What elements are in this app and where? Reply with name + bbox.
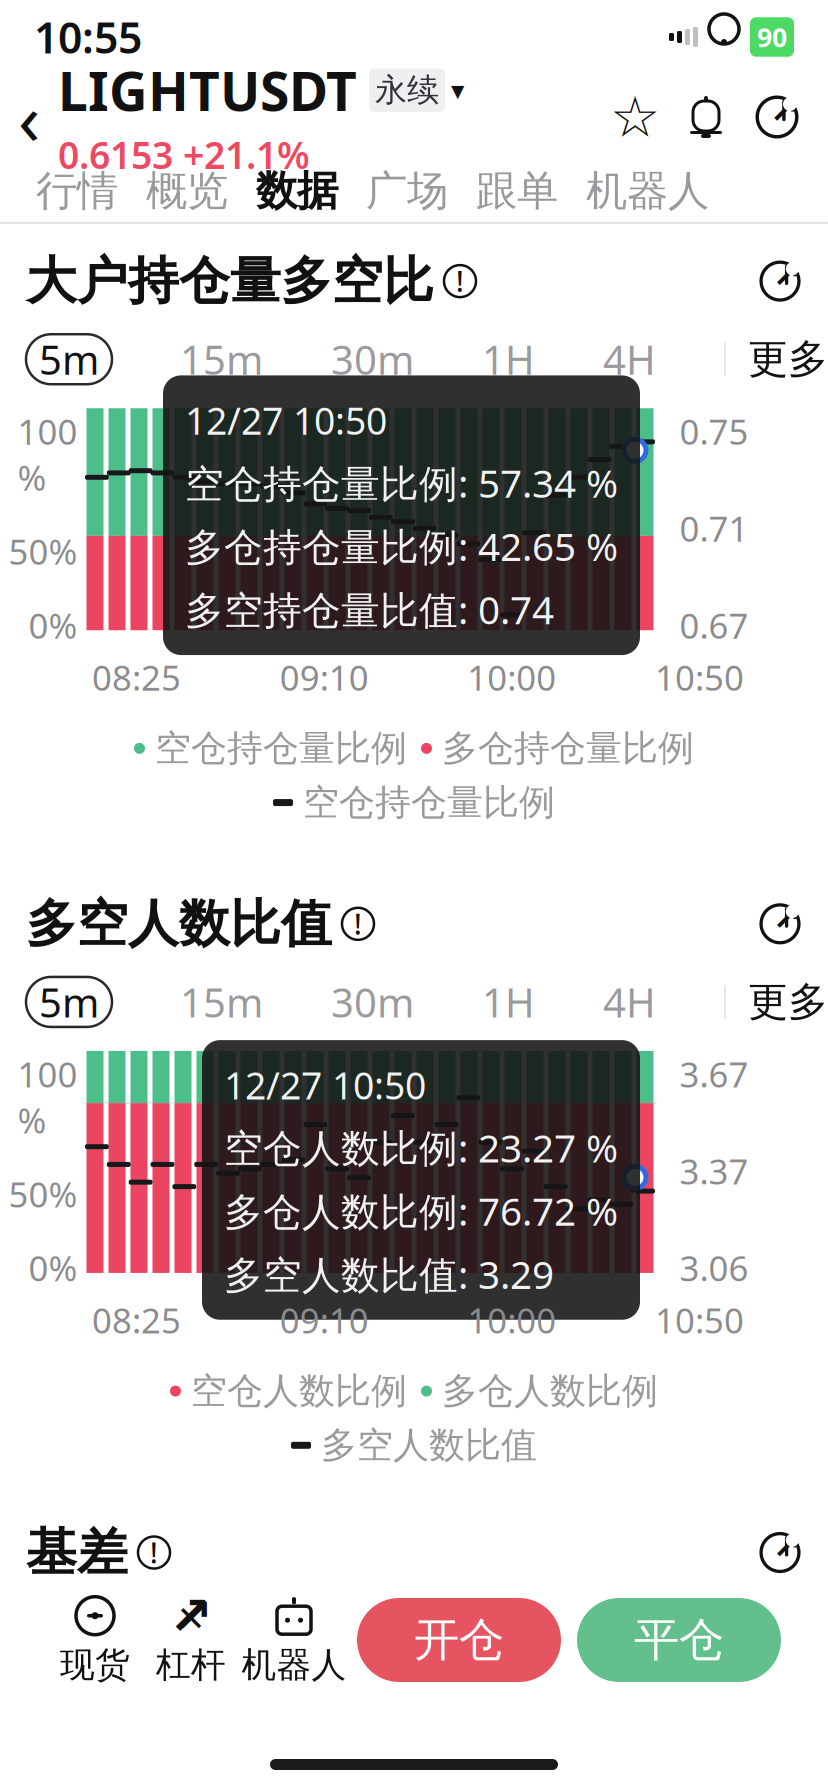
staticText: 0% — [28, 1245, 77, 1291]
staticText: 50% — [8, 528, 77, 574]
button[interactable]: 永续 — [369, 69, 464, 112]
button[interactable]: 5m — [26, 334, 112, 384]
staticText: 1H — [482, 975, 535, 1028]
staticText: 多仓持仓量比例: 42.65 % — [185, 520, 618, 572]
staticText: 行情 — [36, 166, 118, 216]
staticText: 多仓人数比例 — [442, 1369, 658, 1413]
staticText: ↗ — [168, 1585, 213, 1646]
button[interactable]: ↗ — [143, 1594, 239, 1686]
staticText: 杠杆 — [156, 1644, 226, 1686]
staticText: 永续 — [375, 71, 439, 110]
button[interactable]: Back — [0, 82, 58, 152]
staticText: 10:55 — [34, 9, 142, 65]
button[interactable]: Alerts — [686, 94, 726, 140]
staticText: 0.6153 — [58, 130, 173, 179]
button[interactable]: 5m — [26, 977, 112, 1027]
staticText: ↗ — [773, 899, 801, 937]
button[interactable]: 1H — [482, 977, 535, 1027]
staticText: 30m — [331, 975, 414, 1028]
staticText: 空仓人数比例: 23.27 % — [224, 1122, 618, 1173]
staticText: 100% — [17, 1051, 77, 1143]
staticText: ↗ — [769, 91, 798, 131]
button[interactable]: 更多 — [726, 977, 828, 1027]
staticText: 多仓持仓量比例 — [442, 726, 694, 770]
staticText: 多空人数比值 — [321, 1423, 537, 1467]
staticText: 15m — [180, 975, 263, 1028]
staticText: 广场 — [366, 166, 448, 216]
button[interactable]: Share — [754, 94, 800, 140]
button[interactable]: 4H — [603, 334, 656, 384]
staticText: 机器人 — [241, 1644, 346, 1686]
staticText: ! — [150, 1534, 158, 1571]
staticText: 4H — [603, 333, 656, 386]
staticText: 多空持仓量比值: 0.74 — [185, 584, 554, 635]
staticText: 12/27 10:50 — [185, 395, 387, 445]
button[interactable]: 行情 — [22, 160, 132, 222]
staticText: ! — [354, 905, 362, 942]
staticText: 更多 — [748, 335, 828, 384]
button[interactable]: 开仓 — [357, 1598, 561, 1682]
button[interactable]: Favorite — [612, 94, 658, 140]
staticText: 平仓 — [634, 1612, 724, 1668]
button[interactable]: 平仓 — [577, 1598, 781, 1682]
staticText: ! — [456, 262, 464, 300]
button[interactable]: Open 多空人数比值 — [758, 902, 802, 946]
staticText: 3.06 — [679, 1245, 748, 1291]
button[interactable]: 机器人 — [572, 160, 723, 222]
staticText: 机器人 — [586, 166, 709, 216]
staticText: 大户持仓量多空比 — [26, 250, 434, 312]
staticText: 概览 — [146, 166, 228, 216]
staticText: 90 — [757, 19, 787, 55]
staticText: 空仓持仓量比例 — [303, 780, 555, 825]
staticText: 10:50 — [655, 1297, 744, 1343]
staticText: 数据 — [256, 166, 338, 216]
button[interactable]: 30m — [331, 977, 414, 1027]
staticText: 0.67 — [679, 602, 748, 648]
button[interactable]: Open 基差 — [758, 1530, 802, 1574]
staticText: 15m — [180, 333, 263, 386]
button[interactable]: 1H — [482, 334, 535, 384]
staticText: 5m — [39, 333, 99, 386]
staticText: 跟单 — [476, 166, 558, 216]
button[interactable]: 15m — [180, 334, 263, 384]
button[interactable]: 现货 — [47, 1594, 143, 1686]
staticText: ↗ — [773, 1528, 801, 1566]
staticText: +21.1% — [183, 130, 310, 179]
button[interactable]: 30m — [331, 334, 414, 384]
staticText: 5m — [39, 975, 99, 1028]
staticText: 08:25 — [92, 654, 181, 700]
staticText: 08:25 — [92, 1297, 181, 1343]
staticText: 10:50 — [655, 654, 744, 700]
staticText: 更多 — [748, 977, 828, 1026]
staticText: 3.67 — [679, 1051, 748, 1097]
staticText: ▾ — [451, 75, 464, 105]
staticText: 10:00 — [467, 654, 556, 700]
staticText: 50% — [8, 1171, 77, 1217]
staticText: 1H — [482, 333, 535, 386]
staticText: ☆ — [610, 85, 660, 149]
staticText: 多仓人数比例: 76.72 % — [224, 1185, 618, 1236]
button[interactable]: 概览 — [132, 160, 242, 222]
staticText: 30m — [331, 333, 414, 386]
button[interactable]: 广场 — [352, 160, 462, 222]
button[interactable]: 机器人 — [239, 1594, 349, 1686]
button[interactable]: Open 大户持仓量多空比 — [758, 259, 802, 303]
staticText: 3.37 — [679, 1148, 748, 1194]
staticText: 09:10 — [280, 1297, 369, 1343]
staticText: ★ — [611, 87, 659, 147]
staticText: 4H — [603, 975, 656, 1028]
staticText: 0.71 — [679, 505, 748, 551]
staticText: 空仓人数比例 — [191, 1369, 407, 1413]
staticText: 空仓持仓量比例: 57.34 % — [185, 457, 618, 508]
button[interactable]: 跟单 — [462, 160, 572, 222]
staticText: 0% — [28, 602, 77, 648]
button[interactable]: 更多 — [726, 334, 828, 384]
staticText: ✕ — [176, 1599, 205, 1638]
staticText: 09:10 — [280, 654, 369, 700]
staticText: 100% — [17, 408, 77, 500]
button[interactable]: 4H — [603, 977, 656, 1027]
staticText: 基差 — [26, 1521, 128, 1584]
button[interactable]: 数据 — [242, 160, 352, 222]
staticText: 12/27 10:50 — [224, 1060, 426, 1110]
button[interactable]: 15m — [180, 977, 263, 1027]
